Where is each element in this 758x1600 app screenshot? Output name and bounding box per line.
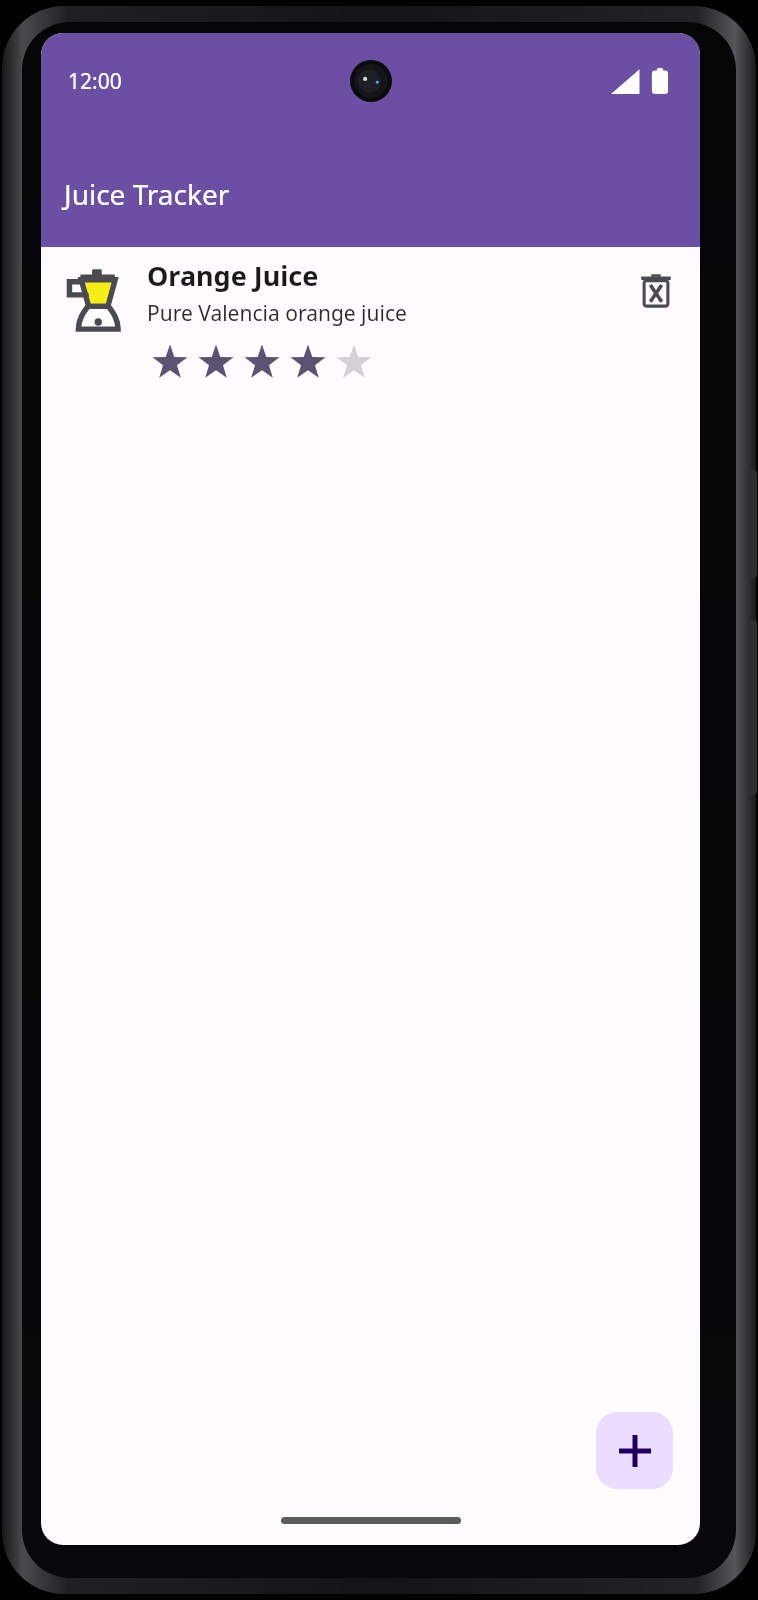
staticText: Juice Tracker [64,175,230,213]
button[interactable]: Orange Juice [41,247,700,395]
staticText: Orange Juice [147,257,319,294]
staticText: Pure Valencia orange juice [147,299,407,328]
button[interactable]: Delete juice [632,267,680,315]
button[interactable]: Add juice [596,1412,673,1489]
staticText: 12:00 [68,67,122,96]
